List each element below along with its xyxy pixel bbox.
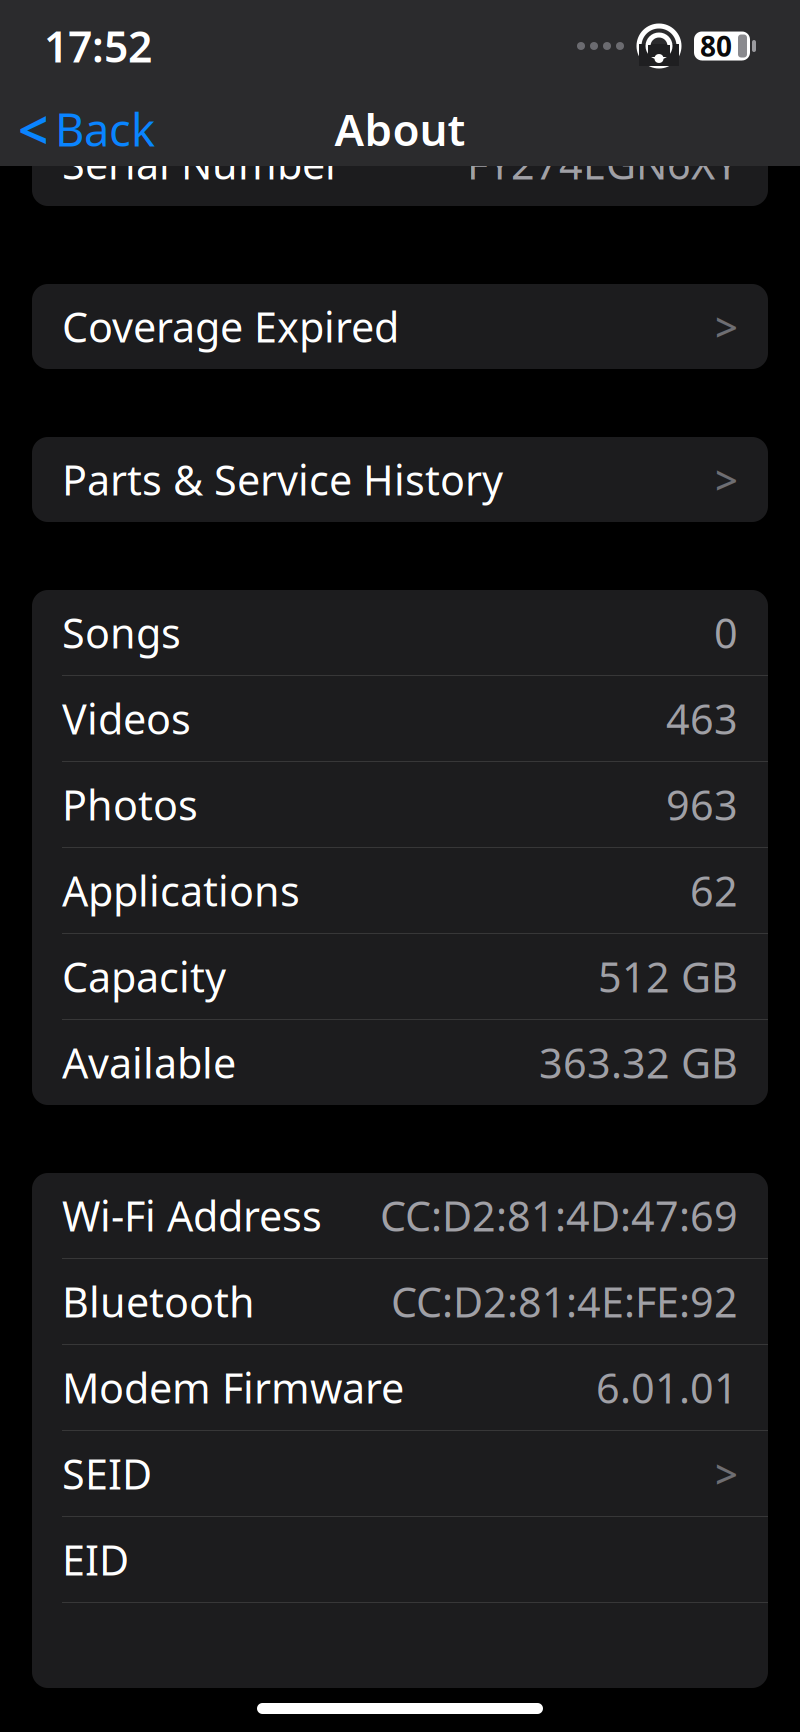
staticText: Modem Firmware <box>62 1360 404 1415</box>
staticText: CC:D2:81:4E:FE:92 <box>391 1274 738 1329</box>
button[interactable]: Available <box>32 1020 768 1105</box>
button[interactable]: Capacity <box>32 934 768 1019</box>
staticText: Songs <box>62 605 181 660</box>
button[interactable]: Bluetooth <box>32 1259 768 1344</box>
staticText: Videos <box>62 691 191 746</box>
staticText: Back <box>55 99 155 159</box>
button[interactable]: Videos <box>32 676 768 761</box>
staticText: 512 GB <box>598 949 738 1004</box>
staticText: Parts & Service History <box>62 452 503 507</box>
staticText: > <box>715 453 738 506</box>
staticText: 963 <box>666 777 738 832</box>
button[interactable]: EID <box>32 1517 768 1602</box>
button[interactable]: Coverage Expired <box>32 284 768 369</box>
staticText: Photos <box>62 777 198 832</box>
staticText: 62 <box>690 863 738 918</box>
staticText: < <box>18 94 49 164</box>
staticText: Available <box>62 1035 236 1090</box>
staticText: Bluetooth <box>62 1274 255 1329</box>
button[interactable]: < <box>0 92 169 166</box>
staticText: SEID <box>62 1446 152 1501</box>
staticText: 80 <box>700 27 732 65</box>
button[interactable]: Serial Number <box>32 121 768 206</box>
staticText: EID <box>62 1532 129 1587</box>
staticText: Wi-Fi Address <box>62 1188 322 1243</box>
staticText: 463 <box>666 691 738 746</box>
staticText: FY274EGN6XY <box>467 136 738 191</box>
staticText: > <box>715 300 738 353</box>
button[interactable]: Modem Firmware <box>32 1345 768 1430</box>
button[interactable]: Wi-Fi Address <box>32 1173 768 1258</box>
staticText: > <box>715 1447 738 1500</box>
staticText: Coverage Expired <box>62 299 399 354</box>
staticText: Serial Number <box>62 136 342 191</box>
button[interactable]: Parts & Service History <box>32 437 768 522</box>
staticText: About <box>334 100 465 158</box>
button[interactable]: Songs <box>32 590 768 675</box>
staticText: Applications <box>62 863 300 918</box>
button[interactable]: Photos <box>32 762 768 847</box>
staticText: 17:52 <box>44 18 152 74</box>
button[interactable]: SEID <box>32 1431 768 1516</box>
button[interactable]: Applications <box>32 848 768 933</box>
staticText: 6.01.01 <box>596 1360 738 1415</box>
staticText: 363.32 GB <box>539 1035 738 1090</box>
staticText: Capacity <box>62 949 226 1004</box>
staticText: 0 <box>714 605 738 660</box>
staticText: CC:D2:81:4D:47:69 <box>380 1188 738 1243</box>
